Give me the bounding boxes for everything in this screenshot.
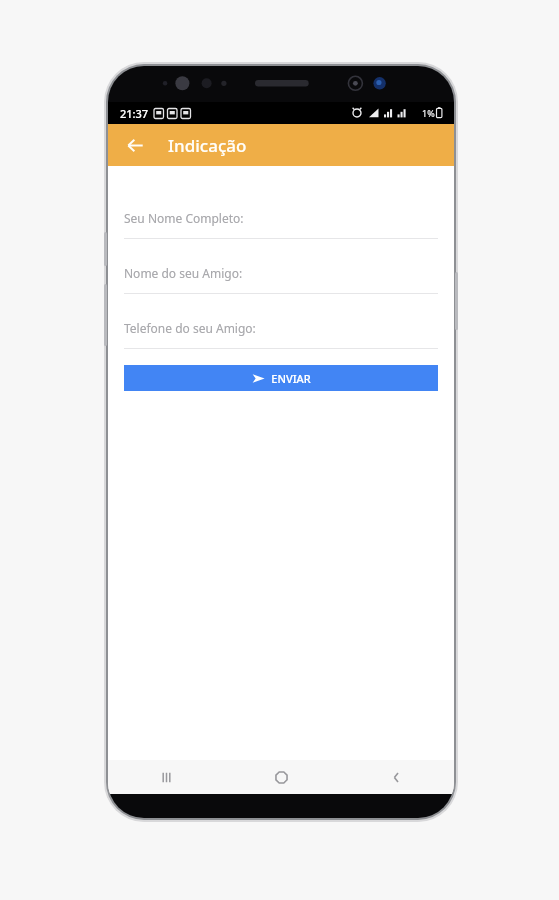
button[interactable]: Back: [116, 126, 154, 164]
button[interactable]: Back: [339, 760, 454, 794]
staticText: 21:37: [120, 106, 149, 121]
button[interactable]: Recent apps: [108, 760, 224, 794]
staticText: Seu Nome Completo:: [124, 210, 244, 226]
staticText: ENVIAR: [271, 371, 311, 386]
staticText: Telefone do seu Amigo:: [124, 320, 256, 336]
staticText: 1%: [422, 107, 435, 119]
staticText: Indicação: [168, 134, 247, 157]
button[interactable]: Home: [224, 760, 339, 794]
button[interactable]: Telefone do seu Amigo:: [124, 320, 438, 349]
button[interactable]: Nome do seu Amigo:: [124, 265, 438, 294]
staticText: Nome do seu Amigo:: [124, 265, 243, 281]
button[interactable]: ENVIAR: [124, 365, 438, 391]
button[interactable]: Seu Nome Completo:: [124, 210, 438, 239]
